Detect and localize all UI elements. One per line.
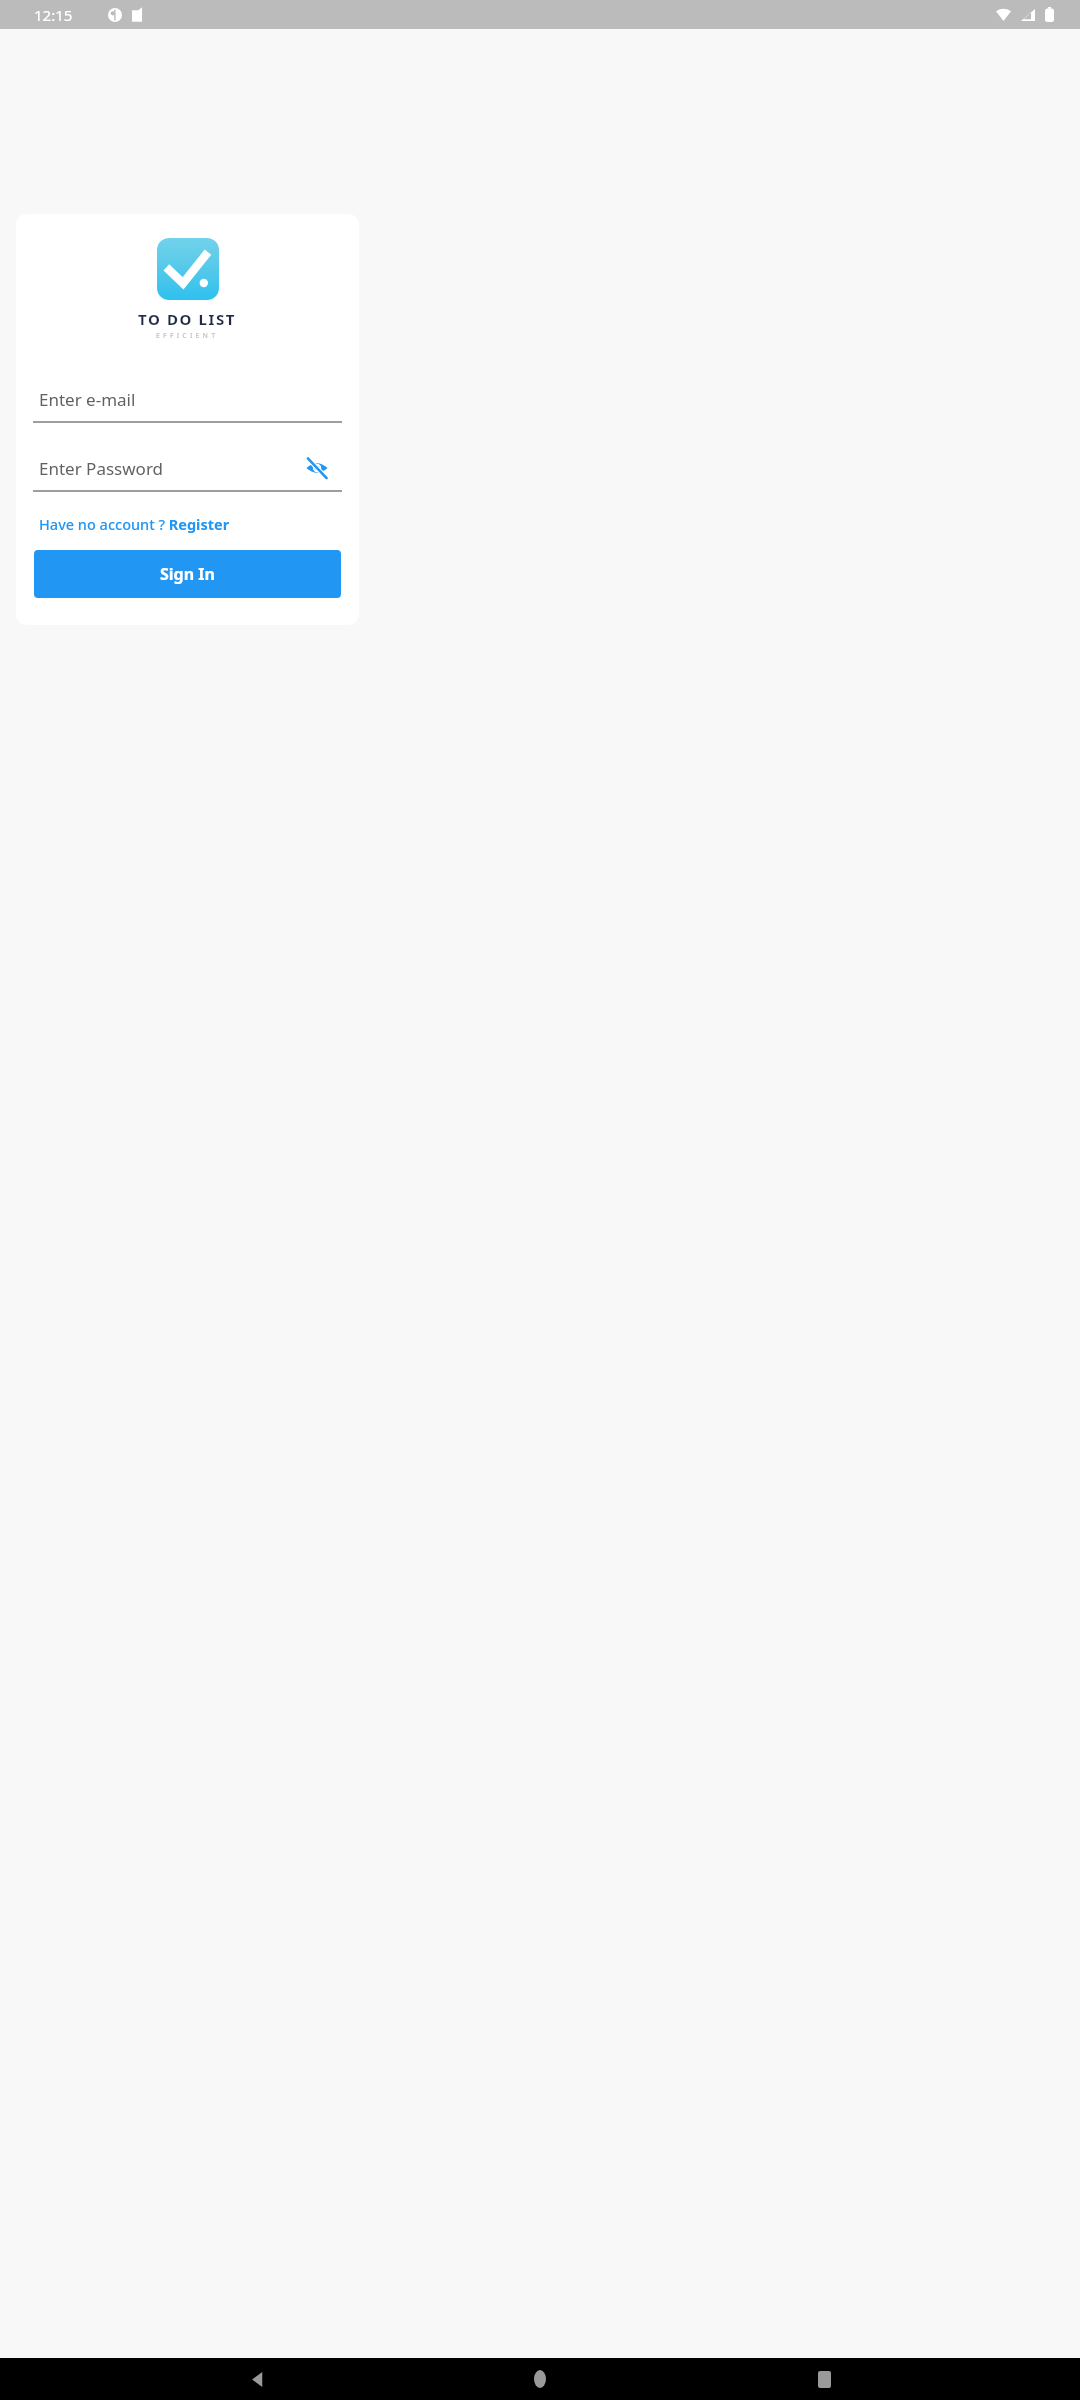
- staticText: 12:15: [34, 5, 73, 25]
- staticText: Enter e-mail: [39, 388, 136, 411]
- staticText: Sign In: [160, 563, 215, 585]
- button[interactable]: Enter e-mail: [33, 378, 342, 420]
- staticText: EFFICIENT: [156, 331, 219, 341]
- button[interactable]: Home: [513, 2358, 567, 2400]
- staticText: Have no account ? Register: [39, 514, 230, 534]
- staticText: TO DO LIST: [138, 309, 237, 329]
- button[interactable]: Toggle password visibility: [302, 453, 332, 483]
- button[interactable]: Sign In: [34, 550, 341, 598]
- button[interactable]: Have no account ? Register: [39, 510, 230, 538]
- button[interactable]: Enter Password: [33, 447, 342, 489]
- button[interactable]: Recent apps: [797, 2358, 851, 2400]
- staticText: Enter Password: [39, 457, 164, 480]
- button[interactable]: Back: [230, 2358, 284, 2400]
